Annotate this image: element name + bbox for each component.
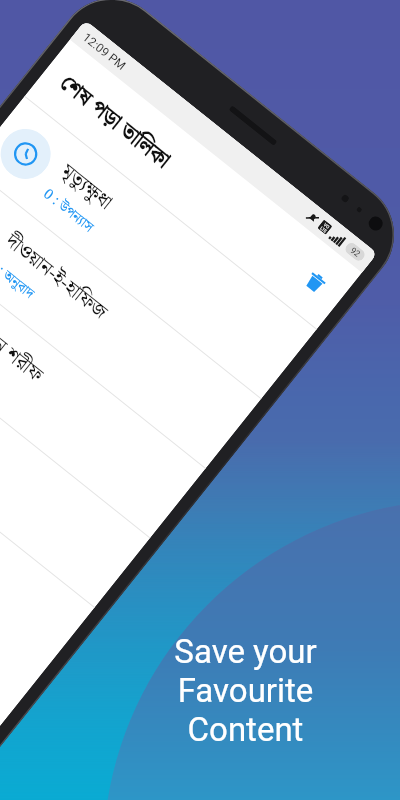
staticText: কোরআন শরীফ: [0, 295, 50, 390]
staticText: VO LTE: [319, 221, 331, 234]
button[interactable]: দীওয়ান-ই-হাফিজ: [0, 166, 261, 468]
staticText: 0 : অনুবাদ: [0, 253, 39, 305]
staticText: মৃত্যুক্ষুধা: [54, 156, 120, 218]
button[interactable]: কোরআন শরীফ: [0, 236, 205, 538]
staticText: Save your Favourite Content: [174, 632, 317, 749]
button[interactable]: Delete all: [289, 255, 342, 308]
button[interactable]: মৃত্যুক্ষুধা: [0, 96, 316, 399]
button[interactable]: গীতাঞ্জলি: [0, 305, 150, 607]
staticText: 0 : উপন্যাস: [38, 184, 99, 238]
staticText: দীওয়ান-ই-হাফিজ: [0, 226, 115, 328]
staticText: 12:09 PM: [80, 30, 128, 73]
staticText: 92: [348, 245, 362, 259]
staticText: শেষ পড়া তালিকা: [52, 67, 178, 178]
